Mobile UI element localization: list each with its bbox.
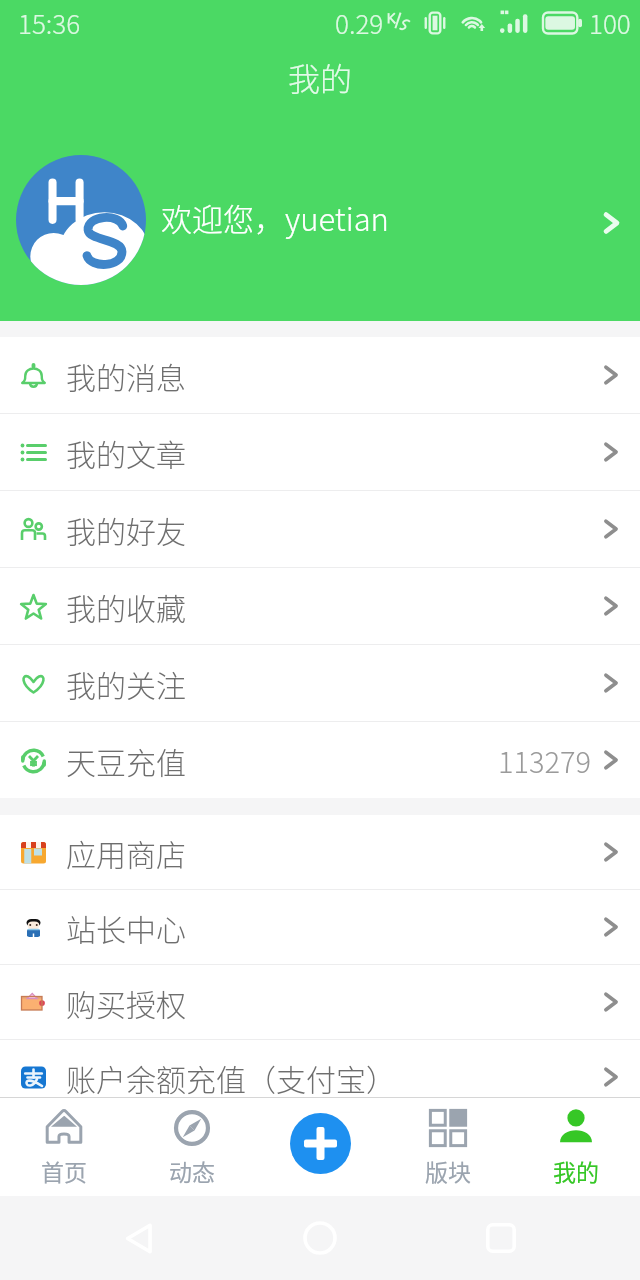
staticText: 0.29 [335,4,384,42]
staticText: 我的消息 [66,354,186,397]
button[interactable]: 我的好友 [0,491,640,568]
button[interactable]: 账户余额充值（支付宝） [0,1040,640,1114]
button[interactable]: Create post [290,1113,351,1174]
staticText: 应用商店 [66,831,186,874]
staticText: 账户余额充值（支付宝） [66,1056,396,1099]
button[interactable]: 版块 [384,1097,512,1196]
staticText: 100 [589,4,631,42]
button[interactable]: 动态 [128,1097,256,1196]
button[interactable]: 首页 [0,1097,128,1196]
other: Recents [486,1223,516,1253]
staticText: 我的 [553,1154,599,1187]
staticText: 我的文章 [66,431,186,474]
staticText: 首页 [41,1154,87,1187]
button[interactable]: 欢迎您，yuetian [0,155,640,285]
staticText: 我的好友 [66,508,186,551]
staticText: 版块 [425,1154,471,1187]
staticText: 天豆充值 [66,739,186,782]
staticText: 我的 [288,54,353,100]
button[interactable]: 我的 [512,1097,640,1196]
staticText: 动态 [169,1154,215,1187]
staticText: 我的收藏 [66,585,186,628]
staticText: 113279 [498,739,592,781]
button[interactable]: 站长中心 [0,890,640,965]
button[interactable]: 我的文章 [0,414,640,491]
button[interactable]: 我的消息 [0,337,640,414]
button[interactable]: 应用商店 [0,815,640,890]
staticText: 站长中心 [66,906,186,949]
staticText: 我的关注 [66,662,186,705]
staticText: 购买授权 [66,981,186,1024]
staticText: 15:36 [18,4,81,42]
button[interactable]: 我的关注 [0,645,640,722]
button[interactable]: 购买授权 [0,965,640,1040]
other: Home [303,1221,337,1255]
staticText: 欢迎您，yuetian [161,195,389,240]
button[interactable]: 天豆充值 [0,722,640,798]
button[interactable]: 我的收藏 [0,568,640,645]
other: Back [123,1222,156,1255]
